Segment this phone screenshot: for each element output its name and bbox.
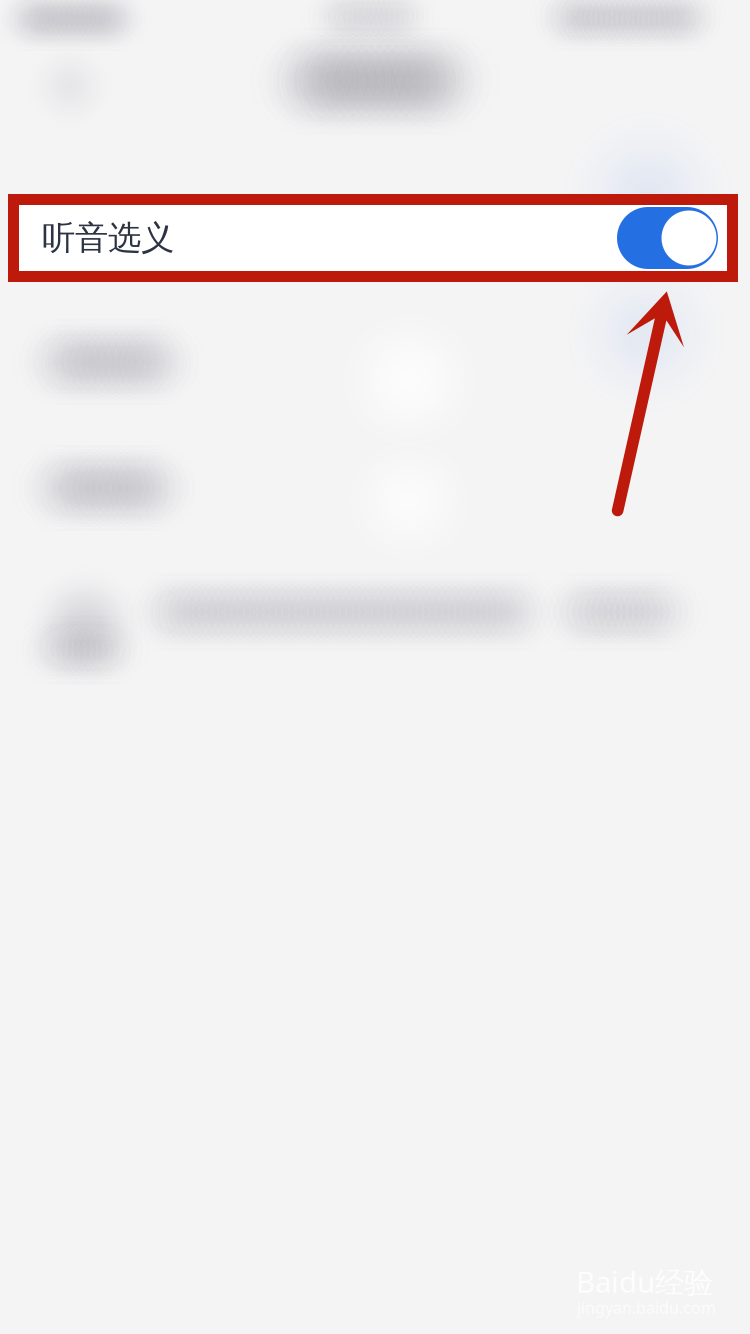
staticText: 听音选义 bbox=[42, 217, 174, 258]
button[interactable]: 听音选义 bbox=[19, 204, 727, 272]
staticText: Baidu经验 bbox=[576, 1262, 713, 1301]
